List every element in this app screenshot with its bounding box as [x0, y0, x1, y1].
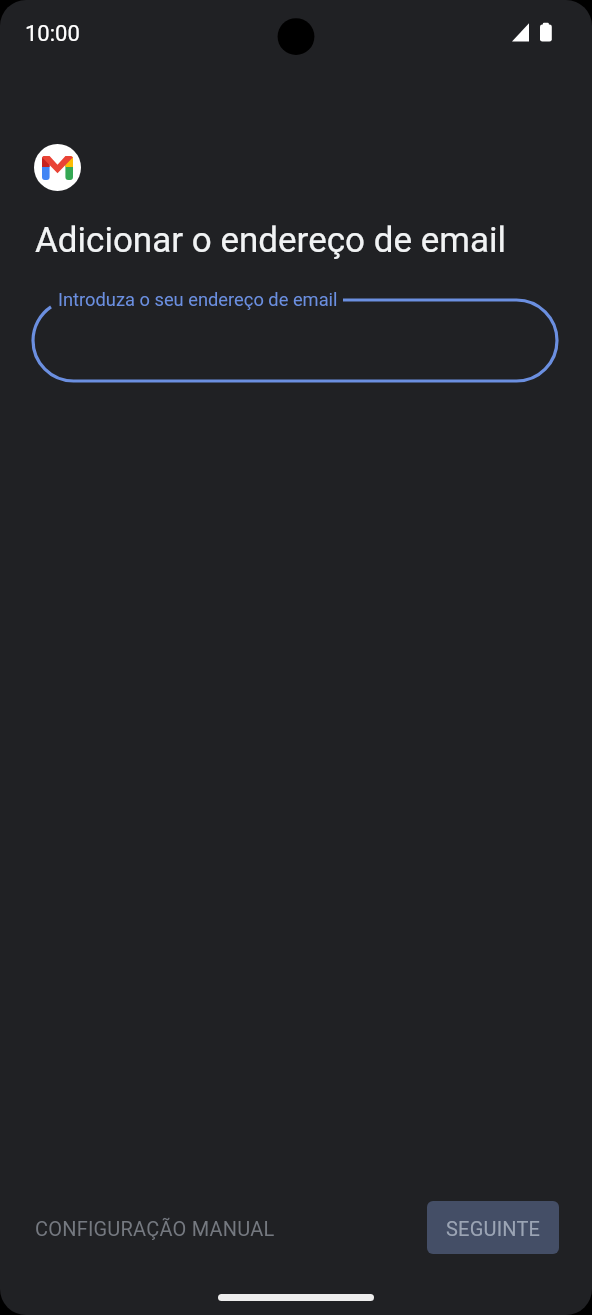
staticText: CONFIGURAÇÃO MANUAL	[36, 1217, 275, 1240]
other: Signal strength and battery status	[512, 22, 554, 43]
button[interactable]: SEGUINTE	[427, 1201, 559, 1254]
staticText: 10:00	[25, 21, 80, 47]
staticText: Adicionar o endereço de email	[35, 220, 506, 261]
button[interactable]: CONFIGURAÇÃO MANUAL	[36, 1201, 276, 1254]
button[interactable]: Introduza o seu endereço de email	[33, 290, 557, 381]
staticText: SEGUINTE	[446, 1217, 541, 1240]
staticText: Introduza o seu endereço de email	[58, 289, 338, 310]
other: Gmail	[34, 144, 81, 191]
other: Home gesture bar	[218, 1294, 374, 1301]
